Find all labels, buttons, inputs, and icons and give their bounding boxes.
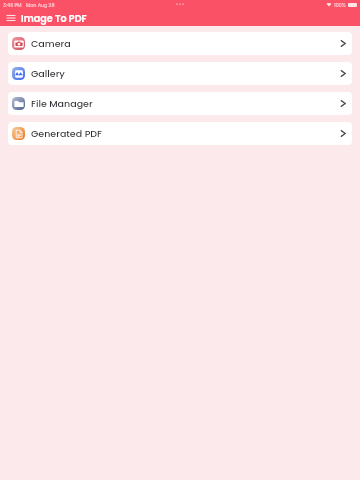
staticText: Image To PDF bbox=[21, 12, 87, 25]
staticText: 100% bbox=[334, 2, 346, 9]
staticText: 3:46 PM bbox=[3, 2, 22, 9]
button[interactable]: Camera bbox=[8, 32, 352, 55]
staticText: Camera bbox=[31, 37, 71, 50]
staticText: Gallery bbox=[31, 67, 65, 80]
button[interactable]: Gallery bbox=[8, 62, 352, 85]
button[interactable]: File Manager bbox=[8, 92, 352, 115]
button[interactable]: Generated PDF bbox=[8, 122, 352, 145]
button[interactable]: Open navigation menu bbox=[0, 10, 21, 26]
staticText: Generated PDF bbox=[31, 127, 102, 140]
staticText: File Manager bbox=[31, 97, 93, 110]
staticText: Mon Aug 28 bbox=[26, 2, 55, 9]
